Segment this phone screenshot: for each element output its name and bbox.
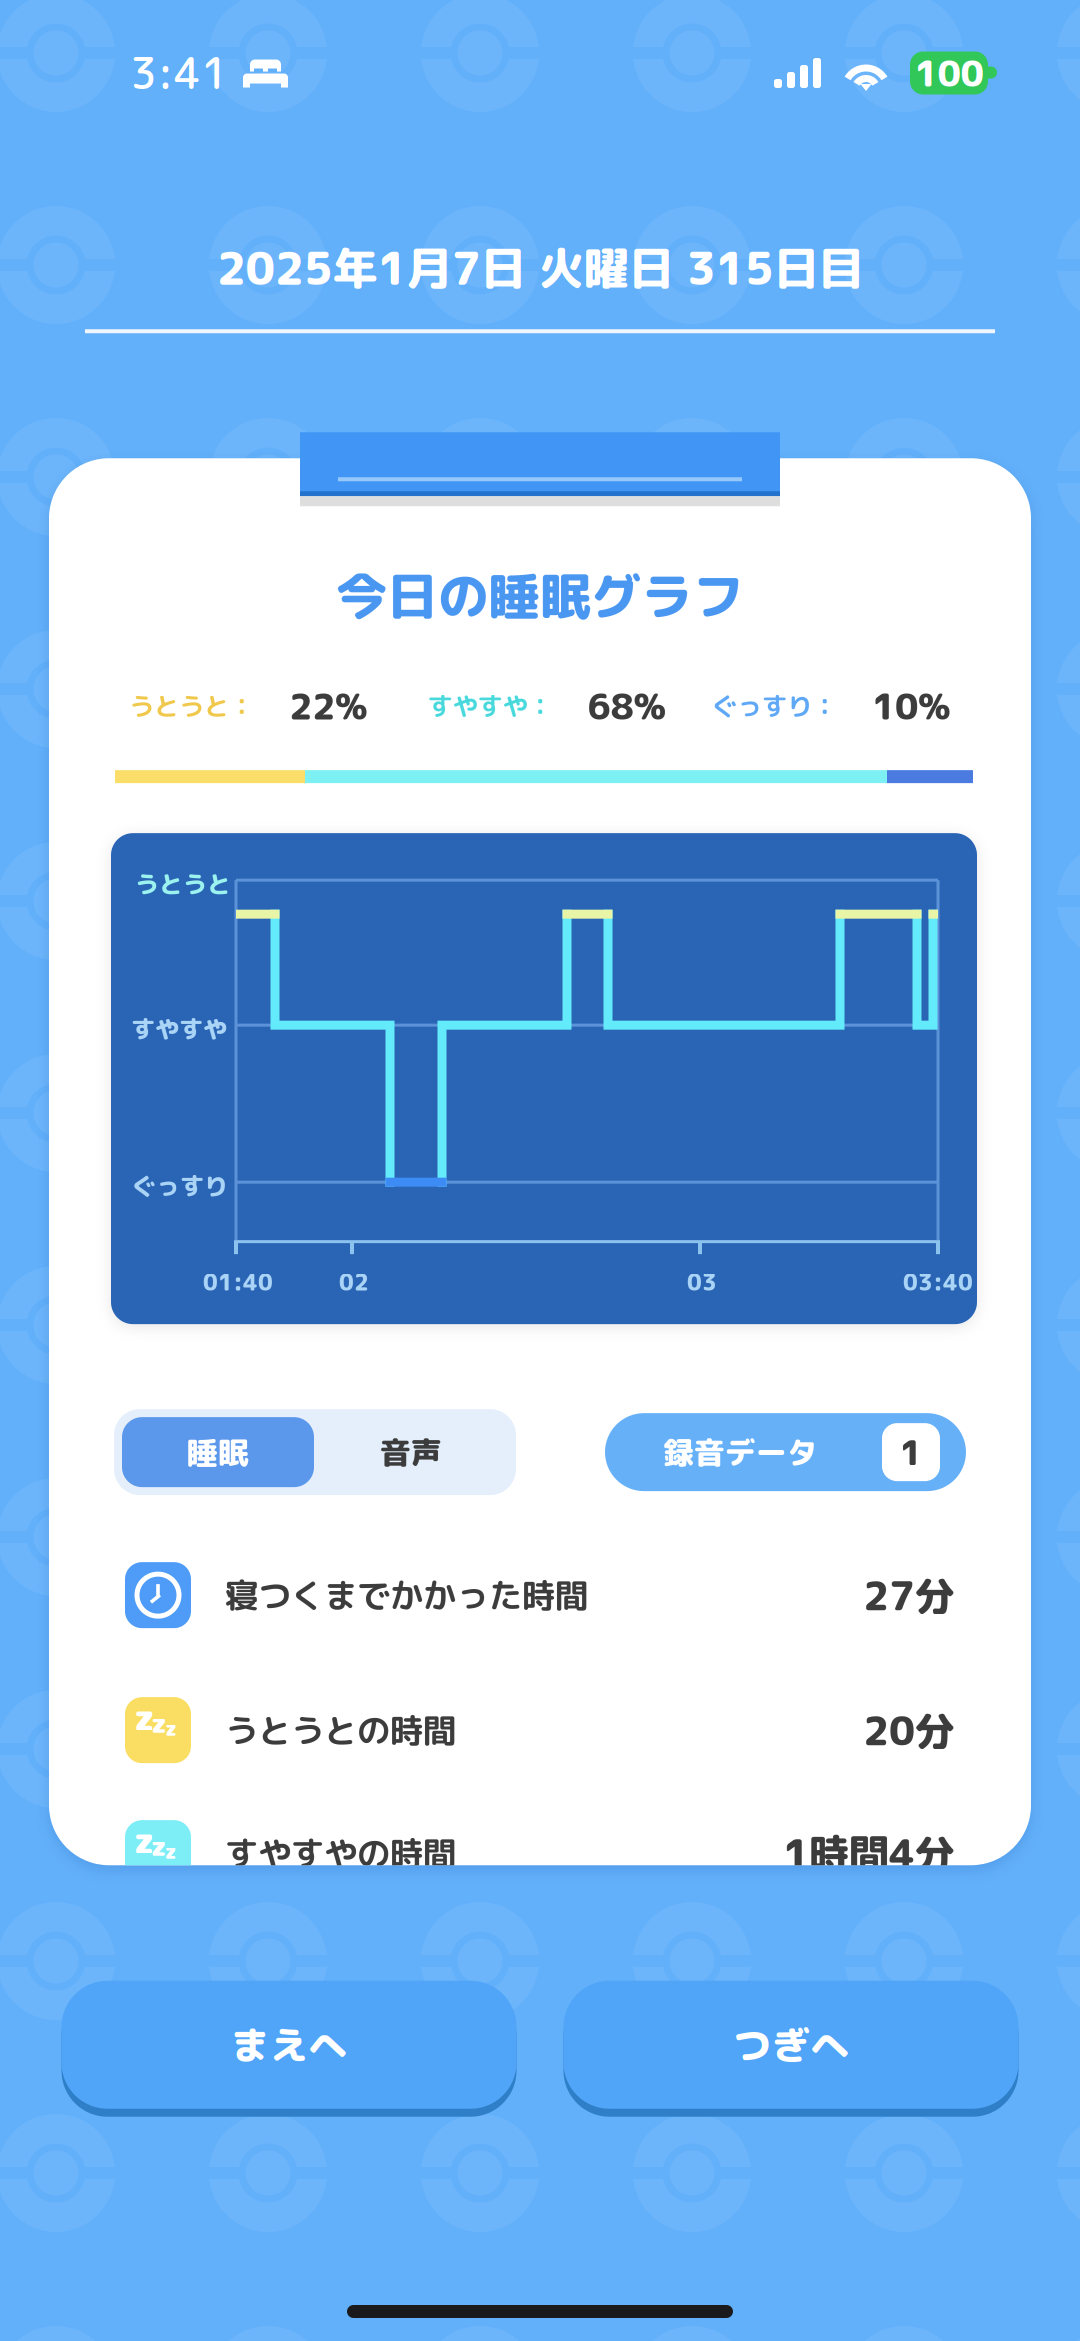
- staticText: 寝つくまでかかった時間: [225, 1572, 588, 1618]
- staticText: 03: [687, 1266, 717, 1298]
- staticText: うとうと: [135, 867, 231, 901]
- staticText: 10%: [872, 681, 951, 731]
- staticText: 睡眠: [187, 1431, 249, 1474]
- staticText: z: [134, 1693, 154, 1741]
- staticText: 今日の睡眠グラフ: [336, 560, 744, 631]
- button[interactable]: まえへ: [61, 1976, 516, 2113]
- button[interactable]: つぎへ: [563, 1976, 1018, 2113]
- staticText: 02: [339, 1266, 369, 1298]
- staticText: うとうとの時間: [225, 1707, 456, 1753]
- button[interactable]: 睡眠: [122, 1417, 314, 1487]
- staticText: まえへ: [230, 2018, 347, 2072]
- button[interactable]: 音声: [314, 1417, 508, 1487]
- staticText: 27分: [863, 1567, 955, 1623]
- staticText: 01:40: [203, 1266, 273, 1298]
- staticText: 1: [899, 1428, 922, 1476]
- staticText: すやすや: [131, 1012, 227, 1046]
- staticText: ぐっすり: [132, 1169, 228, 1203]
- staticText: すやすや：: [427, 688, 552, 724]
- staticText: 20分: [863, 1702, 955, 1758]
- staticText: 録音データ: [663, 1431, 818, 1474]
- staticText: 68%: [587, 681, 666, 731]
- button[interactable]: 録音データ: [605, 1413, 966, 1491]
- staticText: ぐっすり：: [712, 688, 837, 724]
- staticText: 2025年1月7日 火曜日 315日目: [216, 236, 863, 299]
- staticText: うとうと：: [129, 688, 254, 724]
- staticText: 音声: [380, 1431, 442, 1474]
- staticText: 100: [914, 48, 983, 98]
- staticText: z: [165, 1837, 177, 1865]
- staticText: z: [134, 1816, 154, 1864]
- staticText: 3:41: [130, 43, 228, 103]
- staticText: 22%: [289, 681, 368, 731]
- staticText: 03:40: [903, 1266, 973, 1298]
- staticText: 1時間4分: [783, 1825, 955, 1881]
- staticText: z: [151, 1827, 167, 1864]
- staticText: つぎへ: [732, 2018, 849, 2072]
- staticText: z: [151, 1704, 167, 1741]
- staticText: すやすやの時間: [225, 1830, 456, 1876]
- staticText: z: [165, 1714, 177, 1742]
